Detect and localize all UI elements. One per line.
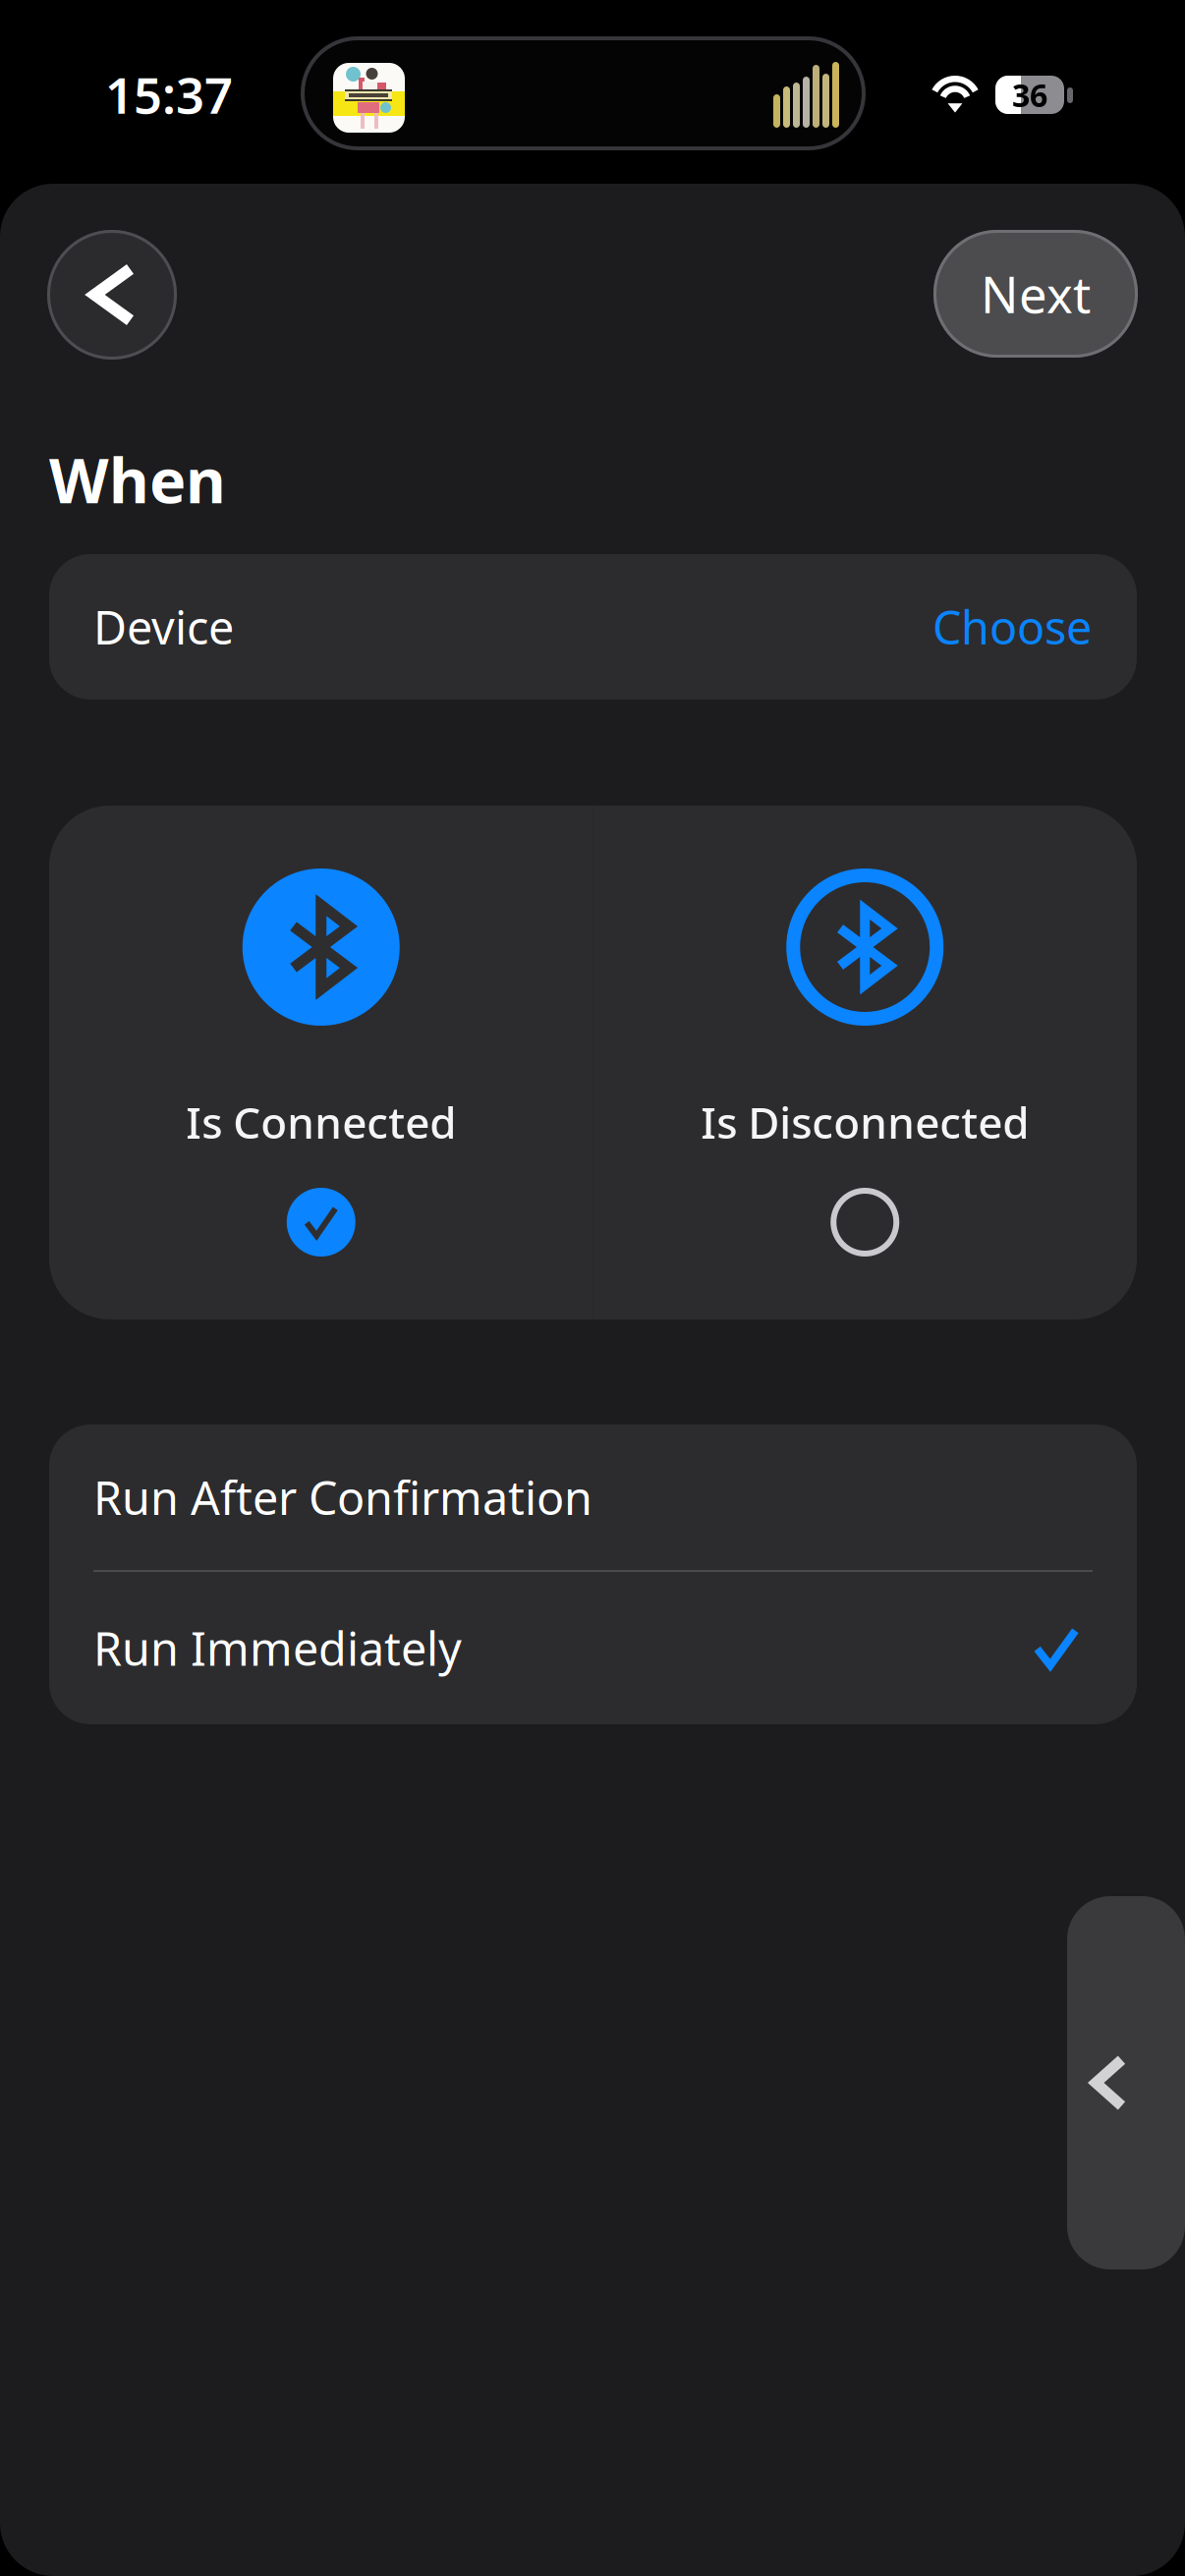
button[interactable]: Run After Confirmation [49, 1425, 1137, 1570]
staticText: Choose [932, 596, 1092, 657]
button[interactable]: Is Disconnected [593, 806, 1137, 1319]
button[interactable]: Back [47, 230, 177, 360]
button[interactable]: Next [933, 230, 1138, 358]
staticText: Run After Confirmation [93, 1467, 592, 1528]
button[interactable]: Run Immediately [49, 1572, 1137, 1724]
button[interactable]: Device [49, 554, 1137, 700]
staticText: Is Disconnected [701, 1093, 1029, 1151]
staticText: Device [93, 596, 234, 657]
staticText: Is Connected [186, 1093, 456, 1151]
staticText: 36 [1012, 74, 1047, 116]
staticText: Next [981, 261, 1091, 327]
staticText: When [49, 439, 226, 520]
button[interactable]: Is Connected [49, 806, 593, 1319]
button[interactable]: Back [1067, 1896, 1185, 2269]
staticText: 15:37 [105, 61, 233, 127]
staticText: Run Immediately [93, 1618, 462, 1679]
